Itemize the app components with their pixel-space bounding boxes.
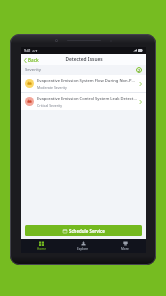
staticText: Schedule Service [69,228,105,234]
staticText: Explore [77,247,89,251]
staticText: 2 [138,68,141,73]
staticText: More [121,247,129,251]
staticText: Back [28,57,39,63]
staticText: Evaporative Emission Control System Leak… [37,96,137,102]
button[interactable]: Explore [62,239,104,253]
other: Filter severity [136,67,142,73]
staticText: Home [37,247,46,251]
button[interactable]: Schedule Service [25,225,142,236]
button[interactable]: Evaporative Emission System Flow During … [21,75,146,92]
staticText: Evaporative Emission System Flow During … [37,78,137,84]
staticText: Detected Issues [65,56,103,63]
staticText: Moderate Severity [37,85,67,90]
button[interactable]: More [104,239,146,253]
staticText: Severity [25,67,41,73]
button[interactable]: Evaporative Emission Control System Leak… [21,93,146,110]
button[interactable]: Severity [21,65,146,75]
staticText: Critical Severity [37,103,63,108]
button[interactable]: Back [21,56,42,64]
staticText: 9:41 ⌂ ▾ [24,48,38,53]
button[interactable]: Home [21,239,62,253]
